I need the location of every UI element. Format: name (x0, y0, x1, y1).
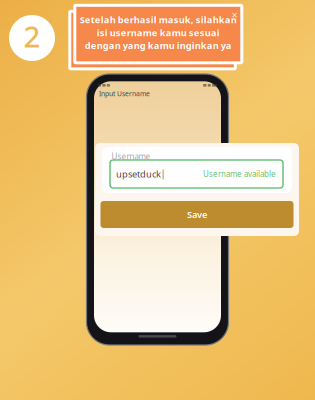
staticText: ✕ (231, 11, 238, 20)
staticText: Input Username (99, 89, 150, 98)
button[interactable]: Save (100, 201, 293, 228)
staticText: 2 (23, 16, 40, 55)
staticText: Save (187, 208, 207, 221)
staticText: upsetduck (116, 168, 161, 180)
staticText: dengan yang kamu inginkan ya (85, 39, 232, 52)
staticText: Username available (203, 169, 276, 179)
staticText: isi username kamu sesuai (97, 26, 220, 39)
staticText: Username (111, 151, 150, 162)
button[interactable]: Close (229, 9, 241, 21)
staticText: Setelah berhasil masuk, silahkan (80, 13, 237, 26)
